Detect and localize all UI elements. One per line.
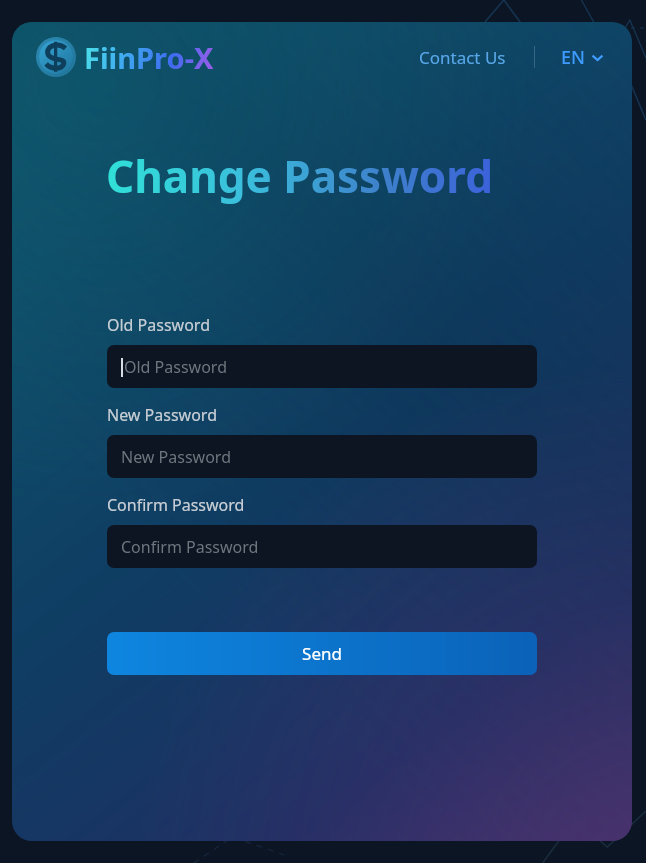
button[interactable]: Language EN [557, 39, 608, 76]
button[interactable]: Old Password [107, 345, 537, 388]
button[interactable]: New Password [107, 435, 537, 478]
staticText: New Password [121, 446, 231, 468]
staticText: Confirm Password [121, 536, 259, 558]
staticText: FiinPro-X [84, 38, 214, 77]
staticText: Old Password [124, 356, 227, 378]
staticText: Contact Us [419, 46, 506, 69]
staticText: Confirm Password [107, 494, 245, 516]
staticText: Send [302, 642, 342, 665]
staticText: Old Password [107, 314, 210, 336]
button[interactable]: Confirm Password [107, 525, 537, 568]
staticText: Change Password [106, 146, 493, 206]
button[interactable]: Send [107, 632, 537, 675]
other: FiinPro-X logo [34, 35, 78, 79]
staticText: EN [561, 45, 585, 70]
staticText: New Password [107, 404, 217, 426]
button[interactable]: Contact Us [413, 40, 512, 75]
